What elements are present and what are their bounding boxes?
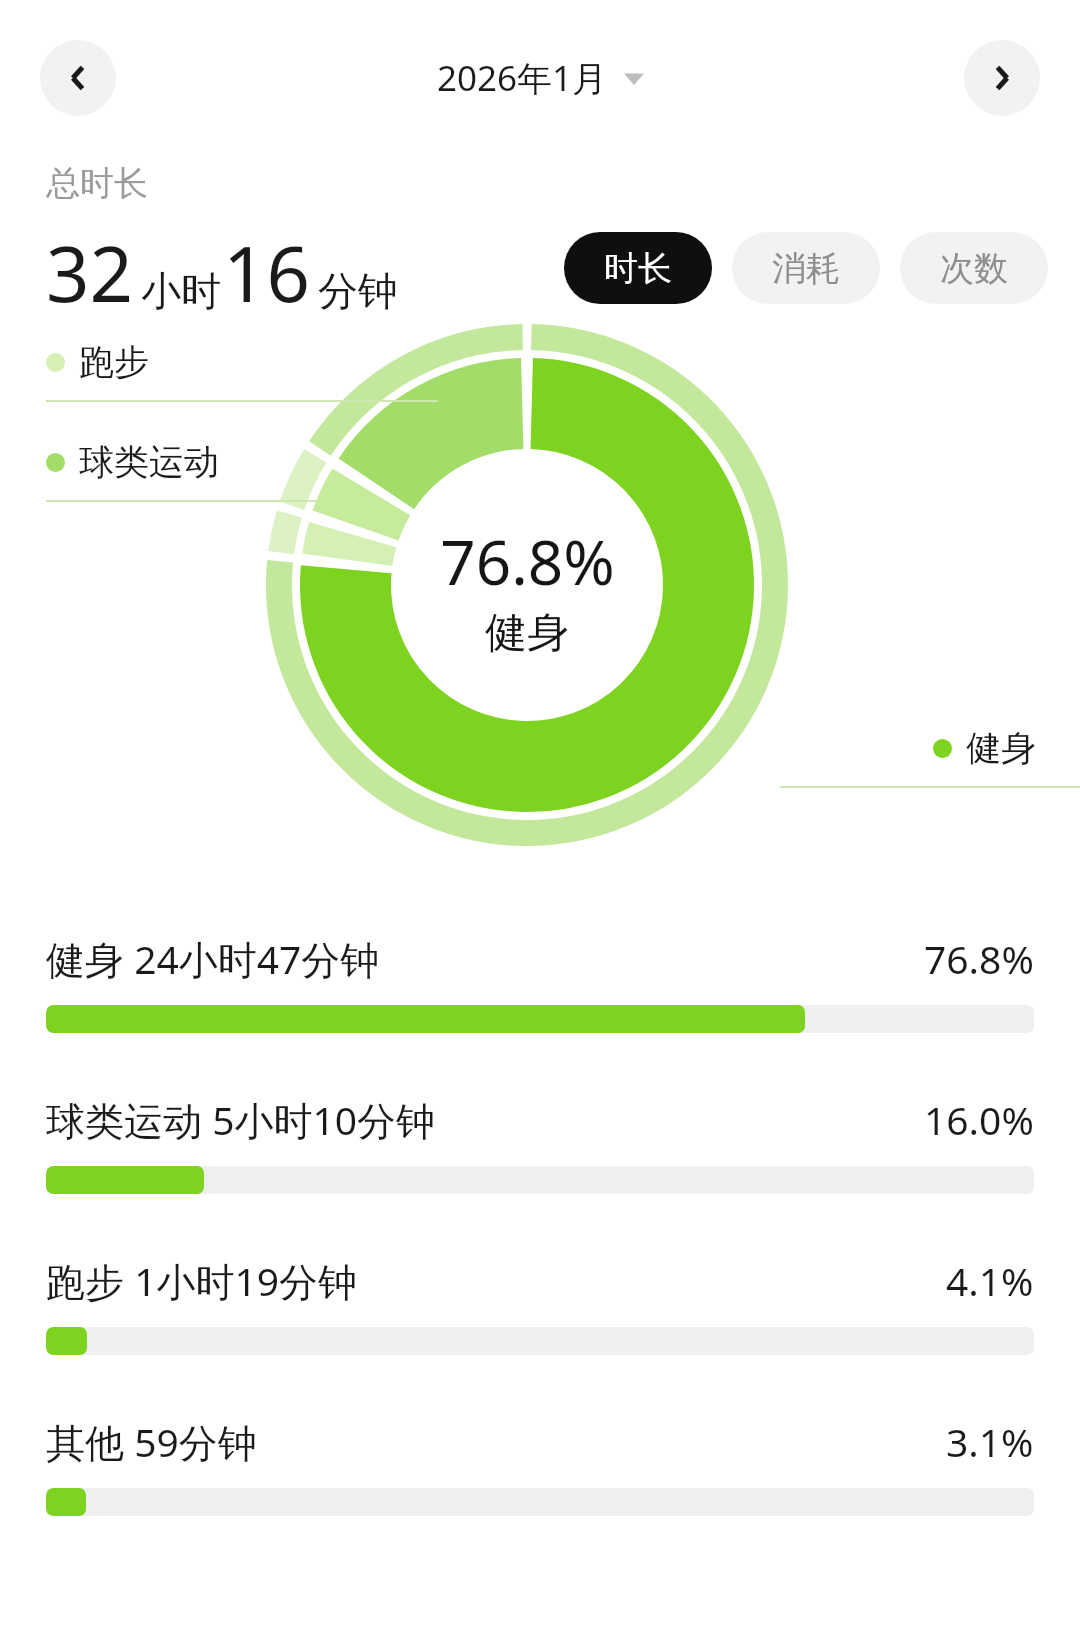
staticText: 3.1%: [946, 1415, 1034, 1468]
button[interactable]: 健身: [933, 726, 1080, 770]
staticText: 其他 59分钟: [46, 1415, 946, 1468]
button[interactable]: Previous month: [40, 40, 116, 116]
staticText: 次数: [940, 247, 1008, 290]
staticText: 球类运动: [79, 440, 219, 484]
button[interactable]: 健身 24小时47分钟: [46, 932, 1034, 1033]
button[interactable]: 跑步: [46, 340, 438, 402]
button[interactable]: 消耗: [732, 232, 880, 304]
staticText: 76.8%: [924, 932, 1034, 985]
staticText: 4.1%: [946, 1254, 1034, 1307]
staticText: 小时: [141, 266, 221, 316]
button[interactable]: 2026年1月: [429, 50, 652, 106]
button[interactable]: 次数: [900, 232, 1048, 304]
staticText: 时长: [604, 247, 672, 290]
button[interactable]: 球类运动 5小时10分钟: [46, 1093, 1034, 1194]
staticText: 总时长: [46, 162, 148, 205]
staticText: 16: [223, 221, 310, 325]
staticText: 健身: [485, 607, 569, 660]
button[interactable]: 时长: [564, 232, 712, 304]
staticText: 健身 24小时47分钟: [46, 932, 924, 985]
staticText: 16.0%: [924, 1093, 1034, 1146]
staticText: 32: [46, 221, 133, 325]
staticText: 2026年1月: [437, 54, 608, 102]
staticText: 跑步: [79, 340, 149, 384]
button[interactable]: Next month: [964, 40, 1040, 116]
staticText: 消耗: [772, 247, 840, 290]
button[interactable]: 其他 59分钟: [46, 1415, 1034, 1516]
staticText: 健身: [966, 726, 1036, 770]
button[interactable]: 球类运动: [46, 440, 316, 502]
staticText: 跑步 1小时19分钟: [46, 1254, 946, 1307]
staticText: 分钟: [318, 266, 398, 316]
staticText: 76.8%: [440, 519, 615, 603]
button[interactable]: 跑步 1小时19分钟: [46, 1254, 1034, 1355]
staticText: 球类运动 5小时10分钟: [46, 1093, 924, 1146]
